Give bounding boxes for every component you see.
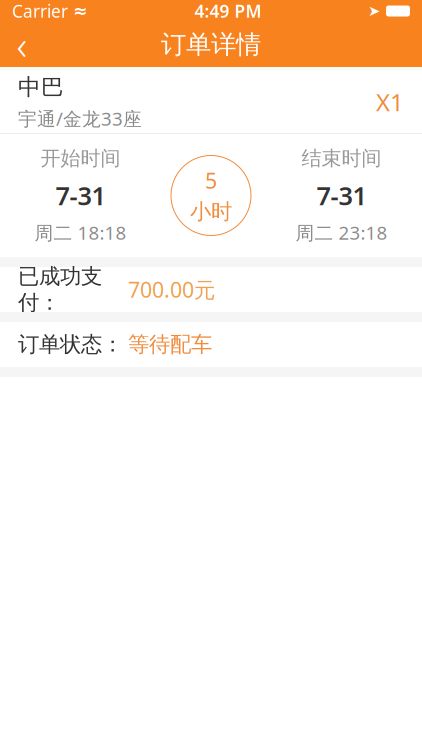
staticText: 宇通/金龙33座 [18, 106, 142, 131]
staticText: ≈ [73, 1, 88, 21]
staticText: 7-31 [316, 179, 366, 212]
staticText: 小时 [190, 199, 232, 225]
staticText: 结束时间 [301, 146, 381, 171]
staticText: 订单详情 [161, 29, 261, 60]
staticText: 中巴 [18, 73, 64, 101]
staticText: 5 [205, 166, 217, 194]
staticText: Carrier [12, 0, 68, 22]
staticText: ‹ [16, 18, 27, 71]
staticText: 已成功支付： [18, 263, 102, 316]
staticText: X1 [376, 86, 404, 118]
staticText: ➤ [368, 3, 380, 19]
button[interactable]: Back [0, 22, 44, 67]
staticText: 700.00元 [128, 275, 215, 304]
staticText: 4:49 PM [194, 0, 261, 22]
staticText: 7-31 [55, 179, 105, 212]
staticText: 开始时间 [40, 146, 120, 171]
staticText: 周二 23:18 [295, 220, 387, 245]
staticText: 订单状态： [18, 331, 123, 358]
staticText: 等待配车 [128, 331, 212, 358]
staticText: 周二 18:18 [34, 220, 126, 245]
